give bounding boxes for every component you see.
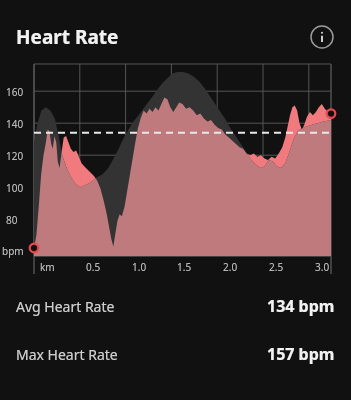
staticText: 157 bpm (267, 343, 335, 365)
button[interactable]: Info (309, 24, 335, 50)
staticText: 2.5 (269, 260, 284, 274)
staticText: 80 (6, 213, 18, 227)
staticText: 160 (6, 85, 24, 99)
staticText: Max Heart Rate (16, 345, 118, 364)
button[interactable]: Max Heart Rate (0, 340, 351, 368)
staticText: Heart Rate (16, 24, 119, 50)
staticText: 120 (6, 149, 24, 163)
staticText: 1.0 (132, 260, 147, 274)
staticText: 100 (6, 181, 24, 195)
staticText: 134 bpm (267, 295, 335, 317)
staticText: 140 (6, 117, 24, 131)
staticText: 3.0 (315, 260, 330, 274)
staticText: Avg Heart Rate (16, 297, 115, 316)
staticText: 2.0 (223, 260, 238, 274)
staticText: km (40, 260, 55, 274)
staticText: bpm (2, 244, 24, 258)
staticText: 1.5 (177, 260, 192, 274)
button[interactable]: Avg Heart Rate (0, 292, 351, 320)
staticText: 0.5 (86, 260, 101, 274)
